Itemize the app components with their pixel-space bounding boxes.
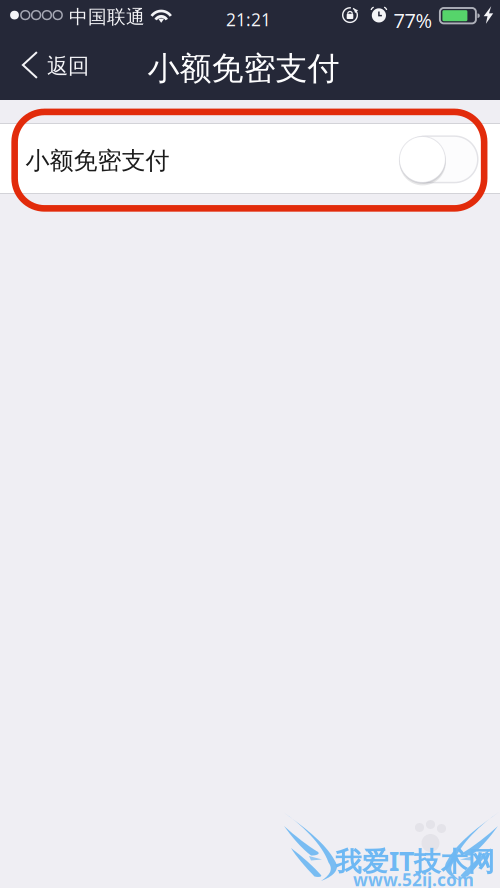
- staticText: 77%: [393, 7, 432, 34]
- staticText: 中国联通: [69, 5, 145, 28]
- button[interactable]: 小额免密支付: [0, 124, 500, 193]
- staticText: 小额免密支付: [147, 49, 339, 88]
- staticText: 返回: [47, 53, 89, 79]
- button[interactable]: 返回: [0, 30, 104, 100]
- staticText: 我爱IT技术网: [335, 843, 495, 878]
- staticText: 小额免密支付: [25, 146, 169, 175]
- staticText: www.52ij.com: [353, 868, 474, 888]
- staticText: 21:21: [226, 8, 271, 31]
